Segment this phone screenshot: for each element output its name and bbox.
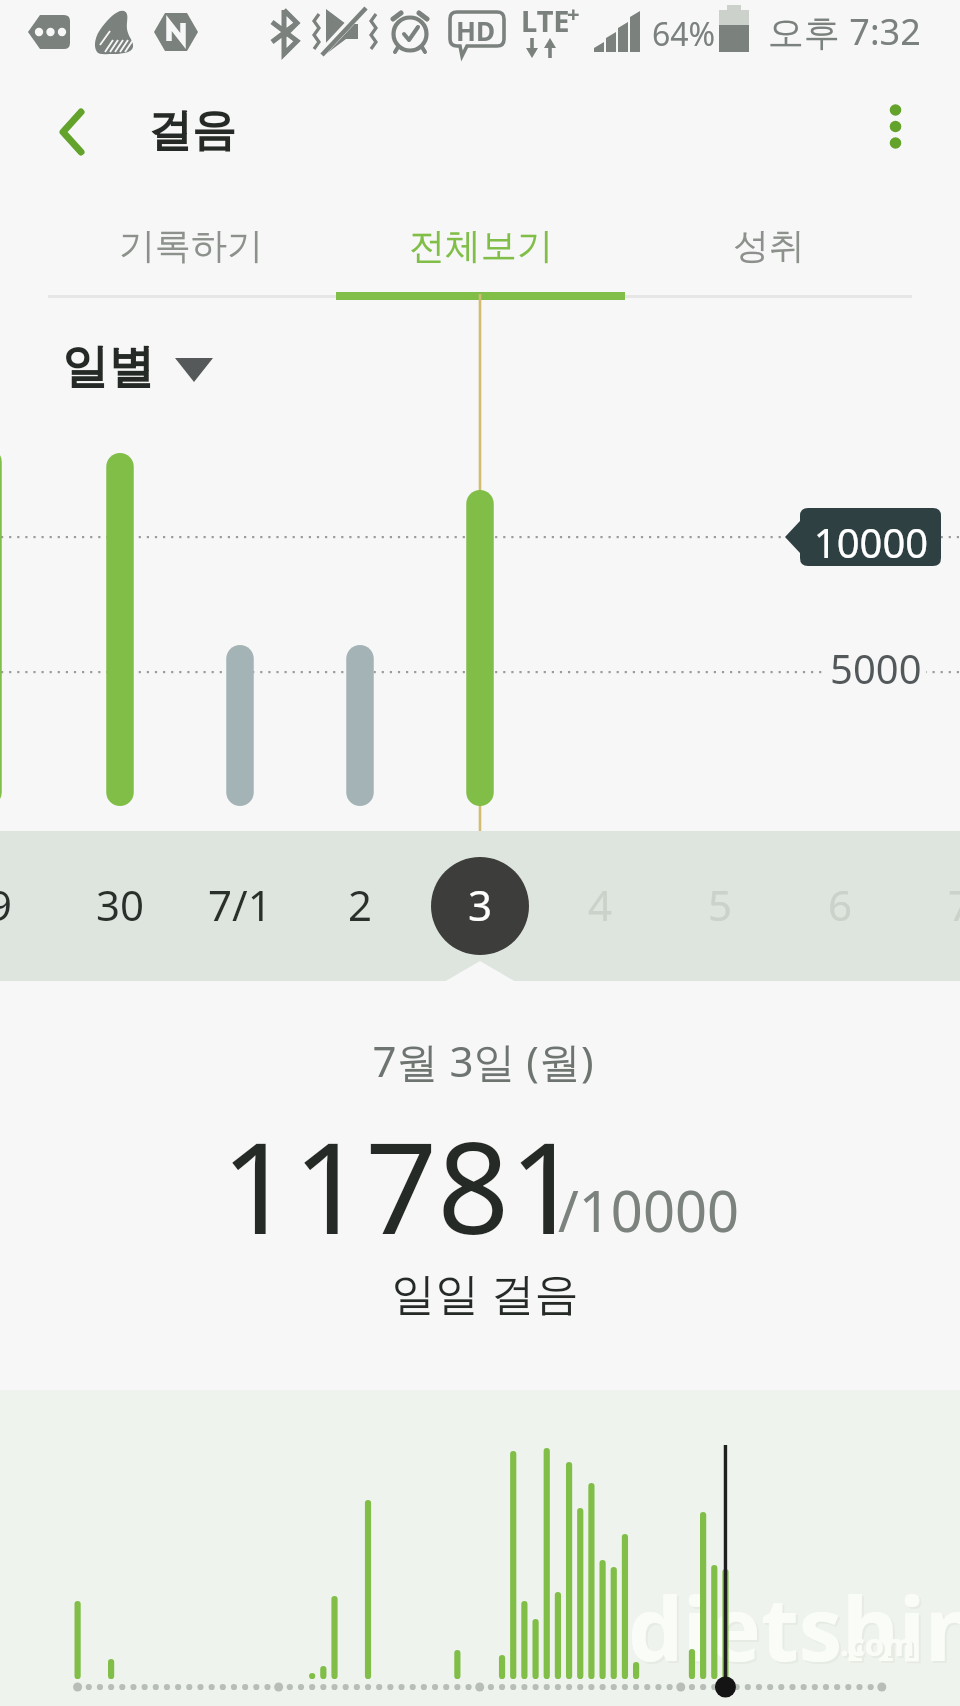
staticText: 30: [96, 876, 145, 933]
staticText: 10000: [793, 515, 949, 569]
staticText: 11781: [221, 1099, 582, 1271]
staticText: /10000: [558, 1172, 739, 1248]
staticText: 오후 7:32: [768, 7, 921, 56]
button[interactable]: 2: [300, 831, 420, 981]
staticText: 일일 걸음: [5, 1262, 960, 1322]
staticText: 4: [588, 876, 613, 933]
staticText: 2: [348, 876, 373, 933]
staticText: dietshin: [630, 1570, 960, 1688]
button[interactable]: More options: [865, 91, 935, 161]
staticText: 성취: [733, 223, 805, 268]
staticText: 3: [468, 876, 493, 933]
staticText: 7/1: [208, 876, 272, 933]
staticText: 5000: [830, 641, 922, 695]
staticText: 7: [948, 876, 960, 933]
button[interactable]: 일별: [62, 338, 213, 396]
button[interactable]: 전체보기: [336, 200, 625, 300]
staticText: 일별: [62, 338, 154, 396]
staticText: LTE: [521, 1, 570, 40]
button[interactable]: 7/1: [180, 831, 300, 981]
button[interactable]: 성취: [625, 200, 912, 300]
staticText: 9: [0, 876, 13, 933]
staticText: 걸음: [148, 103, 236, 158]
staticText: dietshin: [628, 1568, 960, 1686]
staticText: 5: [708, 876, 733, 933]
staticText: 기록하기: [119, 223, 263, 268]
button[interactable]: 기록하기: [48, 200, 333, 300]
button[interactable]: 30: [60, 831, 180, 981]
staticText: +: [567, 0, 580, 28]
staticText: .com: [840, 1623, 915, 1665]
staticText: 전체보기: [409, 223, 553, 268]
staticText: HD: [456, 13, 495, 48]
button[interactable]: Back: [34, 92, 114, 172]
button[interactable]: 9: [0, 831, 60, 981]
button[interactable]: 3: [420, 831, 540, 981]
staticText: 7월 3일 (월): [3, 1032, 960, 1089]
staticText: 64%: [652, 12, 716, 56]
staticText: .com: [842, 1625, 917, 1667]
staticText: 6: [828, 876, 853, 933]
